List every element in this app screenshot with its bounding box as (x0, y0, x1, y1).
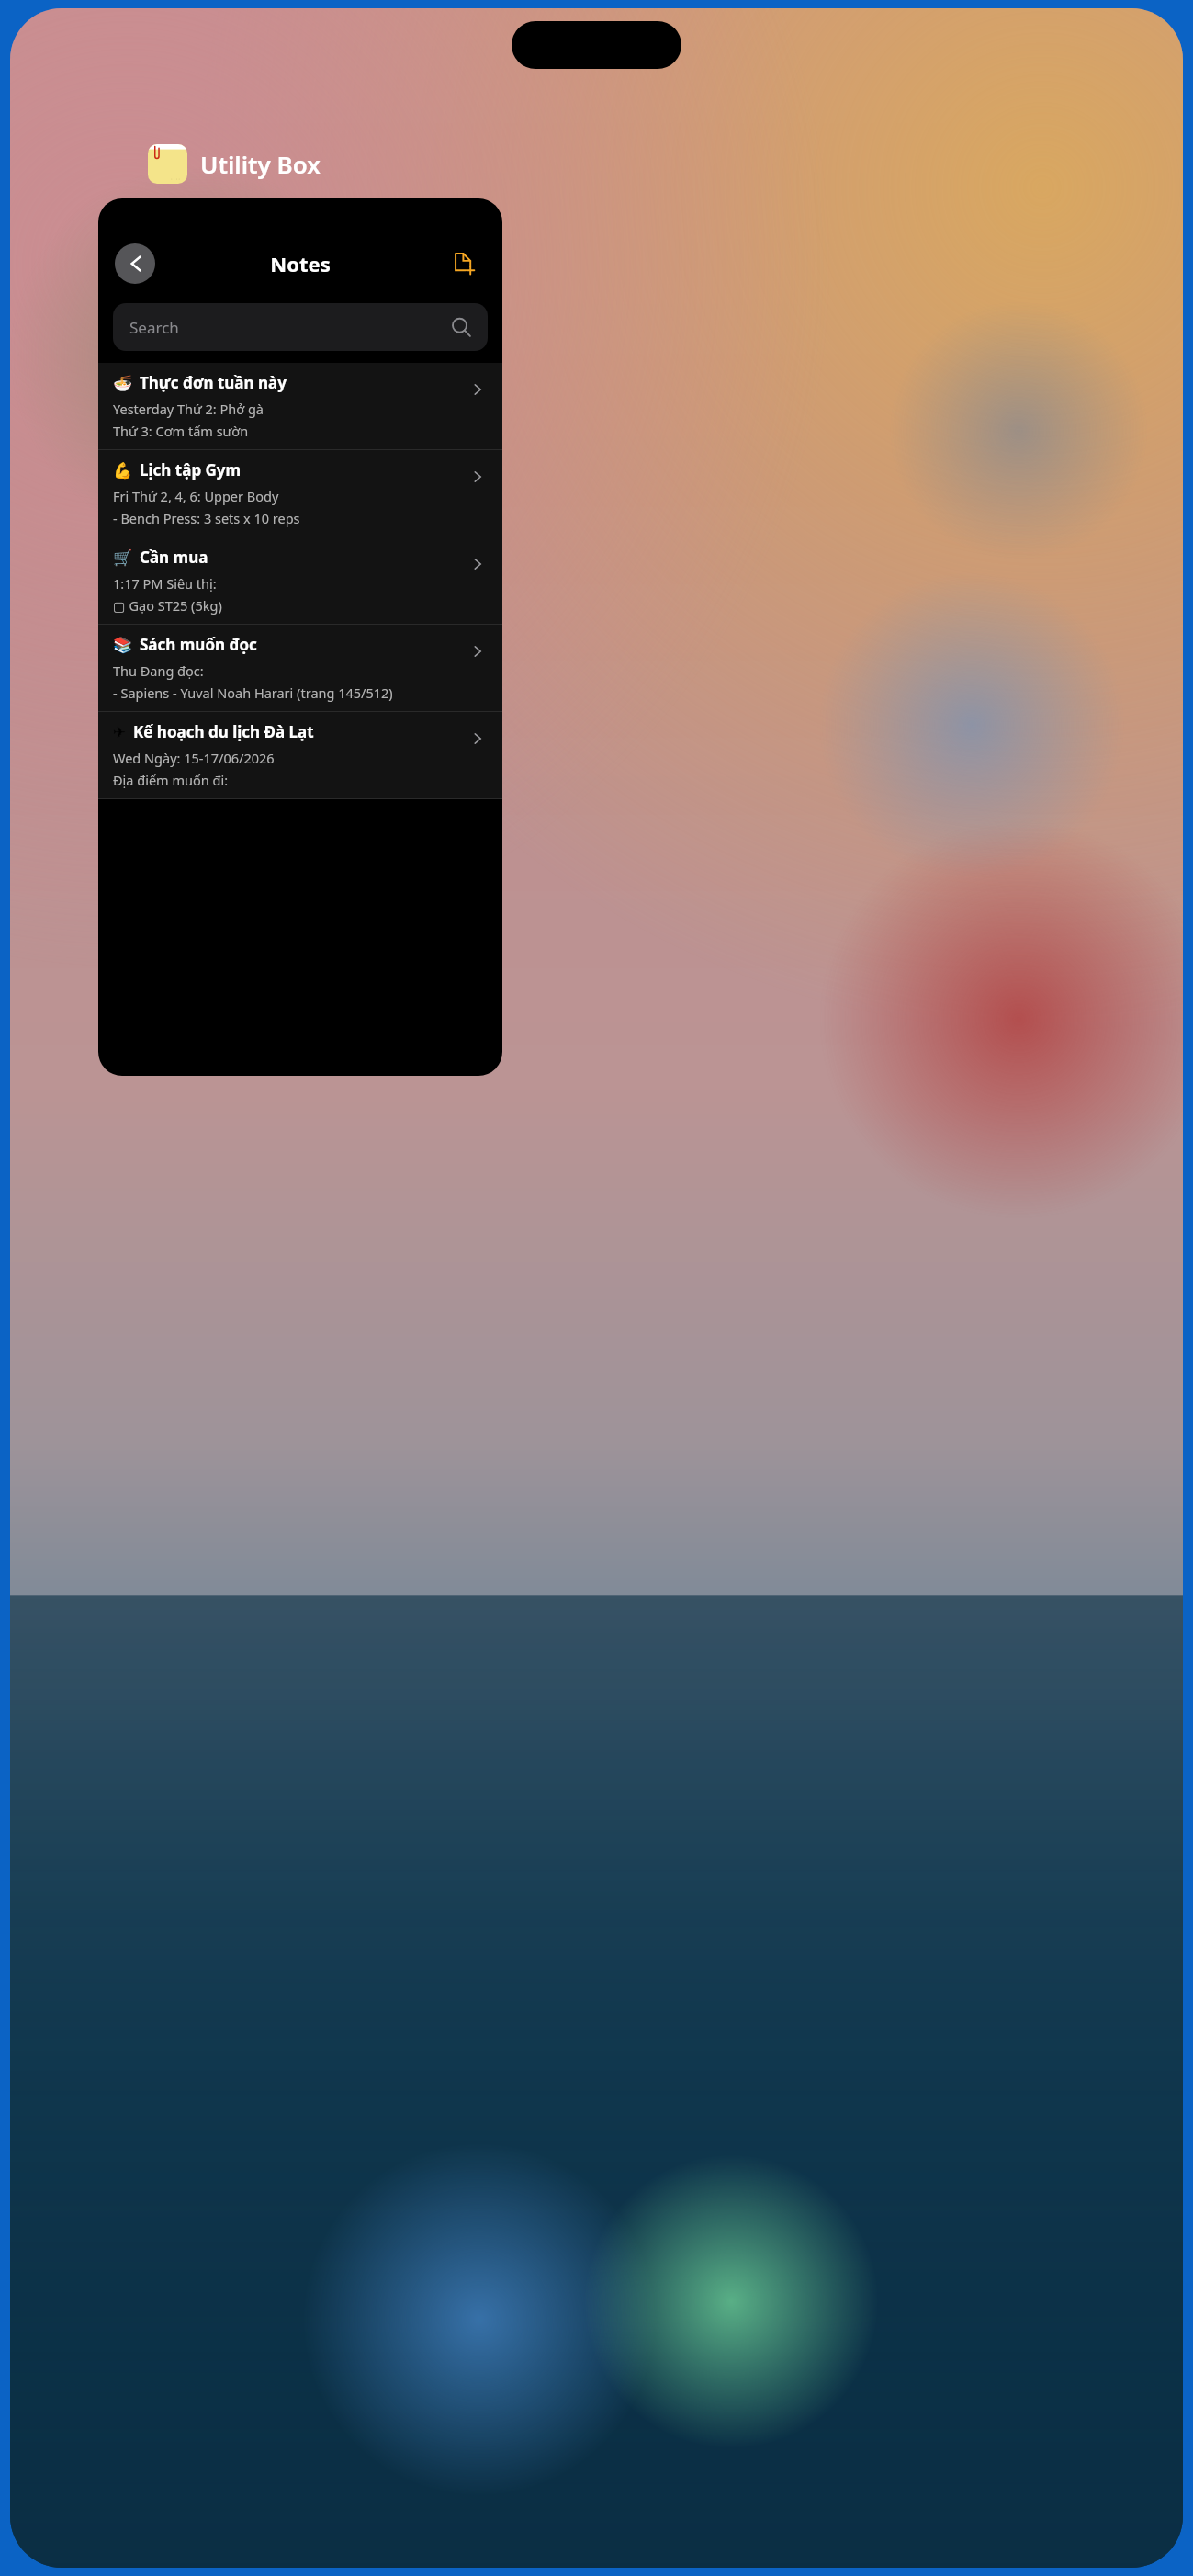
staticText: Wed Ngày: 15-17/06/2026 (113, 749, 275, 767)
staticText: Kế hoạch du lịch Đà Lạt (133, 721, 314, 742)
staticText: 🛒 (113, 548, 133, 567)
staticText: Lịch tập Gym (140, 459, 242, 480)
staticText: ✈️ (113, 723, 127, 741)
button[interactable]: Search (113, 303, 488, 351)
staticText: Sách muốn đọc (140, 634, 257, 655)
button[interactable]: 💪 (98, 450, 502, 537)
staticText: 💪 (113, 461, 133, 480)
button[interactable]: ✈️ (98, 712, 502, 798)
button[interactable]: Back (115, 243, 155, 284)
button[interactable]: Utility Box app icon (148, 144, 187, 184)
staticText: Thực đơn tuần này (140, 372, 287, 393)
staticText: - Bench Press: 3 sets x 10 reps (113, 509, 300, 527)
button[interactable]: New note (447, 245, 484, 282)
staticText: 📚 (113, 636, 133, 654)
staticText: Yesterday Thứ 2: Phở gà (113, 400, 264, 418)
staticText: Cần mua (140, 547, 208, 568)
staticText: 1:17 PM Siêu thị: (113, 574, 217, 593)
button[interactable]: 📚 (98, 625, 502, 711)
staticText: Địa điểm muốn đi: (113, 771, 229, 789)
staticText: Utility Box (200, 148, 321, 180)
staticText: Thứ 3: Cơm tấm sườn (113, 422, 249, 440)
staticText: - Sapiens - Yuval Noah Harari (trang 145… (113, 684, 393, 702)
staticText: Search (129, 317, 179, 338)
staticText: 🍜 (113, 374, 133, 392)
staticText: Notes (270, 250, 331, 277)
staticText: Thu Đang đọc: (113, 661, 204, 680)
staticText: Fri Thứ 2, 4, 6: Upper Body (113, 487, 279, 505)
staticText: ▢ Gạo ST25 (5kg) (113, 596, 222, 615)
button[interactable]: 🍜 (98, 363, 502, 449)
button[interactable]: 🛒 (98, 537, 502, 624)
